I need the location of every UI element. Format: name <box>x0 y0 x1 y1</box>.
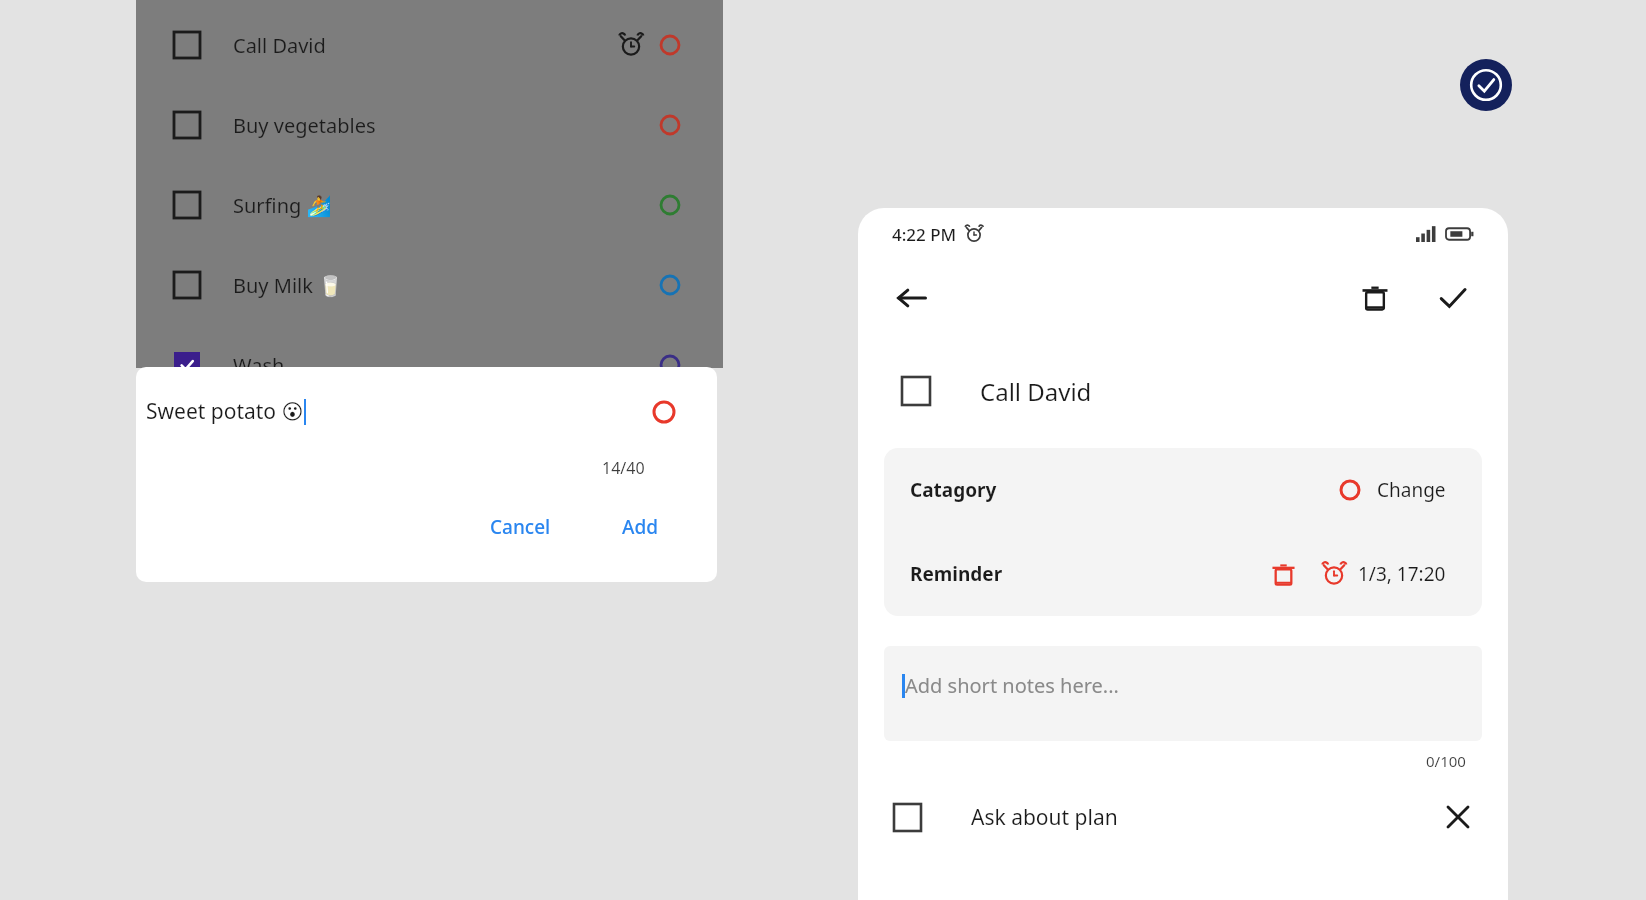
staticText: Add <box>622 514 659 540</box>
staticText: 0/100 <box>1426 751 1466 771</box>
staticText: Add short notes here... <box>905 672 1119 699</box>
staticText: 1/3, 17:20 <box>1358 561 1446 587</box>
staticText: Cancel <box>490 514 551 540</box>
button[interactable]: Add short notes here... <box>884 646 1482 741</box>
staticText: Ask about plan <box>971 803 1118 832</box>
staticText: Change <box>1377 477 1446 503</box>
button[interactable]: Delete <box>1350 273 1400 323</box>
button[interactable]: Catagory <box>884 448 1482 532</box>
button[interactable]: Save <box>1428 273 1478 323</box>
staticText: Sweet potato 😮 <box>146 397 304 426</box>
staticText: Surfing 🏄 <box>233 192 332 219</box>
staticText: Call David <box>233 32 326 59</box>
button[interactable]: Buy Milk 🥛 <box>136 256 723 314</box>
button[interactable]: Call David <box>858 366 1508 416</box>
button[interactable]: Remove subtask <box>1436 795 1480 839</box>
staticText: Wash <box>233 352 285 379</box>
button[interactable]: App icon <box>1460 59 1512 111</box>
button[interactable]: Call David <box>136 16 723 74</box>
staticText: Catagory <box>910 477 997 503</box>
button[interactable]: Add <box>614 506 667 548</box>
staticText: Reminder <box>910 561 1003 587</box>
button[interactable]: Wash <box>136 336 723 394</box>
button[interactable]: Remove reminder <box>1266 557 1300 591</box>
button[interactable]: Reminder <box>884 532 1482 616</box>
staticText: Buy Milk 🥛 <box>233 272 344 299</box>
button[interactable]: Buy vegetables <box>136 96 723 154</box>
staticText: Call David <box>980 375 1092 408</box>
button[interactable]: Back <box>888 274 936 322</box>
staticText: 4:22 PM <box>892 223 957 246</box>
button[interactable]: Cancel <box>482 506 559 548</box>
staticText: 14/40 <box>602 457 645 479</box>
button[interactable]: Surfing 🏄 <box>136 176 723 234</box>
staticText: Buy vegetables <box>233 112 376 139</box>
button[interactable]: Ask about plan <box>858 789 1508 845</box>
